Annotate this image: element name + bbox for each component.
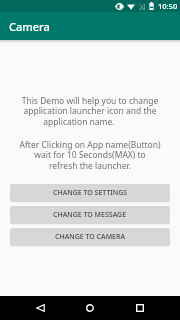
button[interactable]: CHANGE TO MESSAGE bbox=[10, 206, 170, 224]
other: Wi-Fi bbox=[127, 3, 135, 10]
staticText: CHANGE TO MESSAGE bbox=[53, 210, 127, 220]
staticText: CHANGE TO SETTINGS bbox=[53, 188, 128, 198]
button[interactable]: Home bbox=[78, 296, 102, 320]
staticText: CHANGE TO CAMERA bbox=[55, 232, 125, 242]
other: Battery bbox=[149, 2, 154, 10]
other: No signal bbox=[139, 3, 145, 10]
staticText: This Demo will help you to change applic… bbox=[19, 95, 161, 128]
button[interactable]: Recent apps bbox=[128, 296, 152, 320]
staticText: After Clicking on App name(Button) wait … bbox=[19, 139, 161, 172]
staticText: 10:50 bbox=[158, 1, 178, 11]
other: Do not disturb bbox=[115, 3, 124, 10]
staticText: Camera bbox=[9, 19, 50, 34]
button[interactable]: CHANGE TO CAMERA bbox=[10, 228, 170, 246]
button[interactable]: CHANGE TO SETTINGS bbox=[10, 184, 170, 202]
button[interactable]: Back bbox=[28, 296, 52, 320]
